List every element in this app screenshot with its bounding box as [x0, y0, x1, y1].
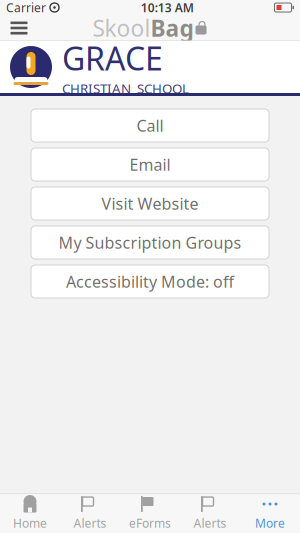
button[interactable]: Home	[0, 494, 60, 532]
staticText: My Subscription Groups	[58, 232, 241, 253]
button[interactable]: Alerts	[180, 494, 240, 532]
button[interactable]: Accessibility Mode: off	[31, 265, 269, 298]
staticText: Home	[13, 515, 47, 531]
staticText: Skool	[92, 13, 150, 43]
staticText: Carrier	[6, 0, 46, 15]
button[interactable]: eForms	[120, 494, 180, 532]
staticText: Alerts	[73, 515, 106, 531]
staticText: eForms	[129, 515, 171, 531]
staticText: Alerts	[193, 515, 226, 531]
staticText: 10:13 AM	[141, 0, 194, 15]
staticText: Call	[136, 115, 163, 136]
staticText: Email	[129, 154, 170, 175]
button[interactable]: Call	[31, 109, 269, 142]
button[interactable]: Alerts	[60, 494, 120, 532]
staticText: GRACE	[62, 37, 163, 79]
button[interactable]: Visit Website	[31, 187, 269, 220]
button[interactable]: Email	[31, 148, 269, 181]
staticText: CHRISTIAN SCHOOL	[62, 79, 189, 97]
button[interactable]: More	[240, 494, 300, 532]
staticText: Bag	[150, 13, 193, 43]
button[interactable]: My Subscription Groups	[31, 226, 269, 259]
staticText: Visit Website	[101, 193, 198, 214]
staticText: Accessibility Mode: off	[66, 271, 234, 292]
staticText: More	[255, 515, 285, 531]
button[interactable]: Menu	[0, 15, 38, 41]
